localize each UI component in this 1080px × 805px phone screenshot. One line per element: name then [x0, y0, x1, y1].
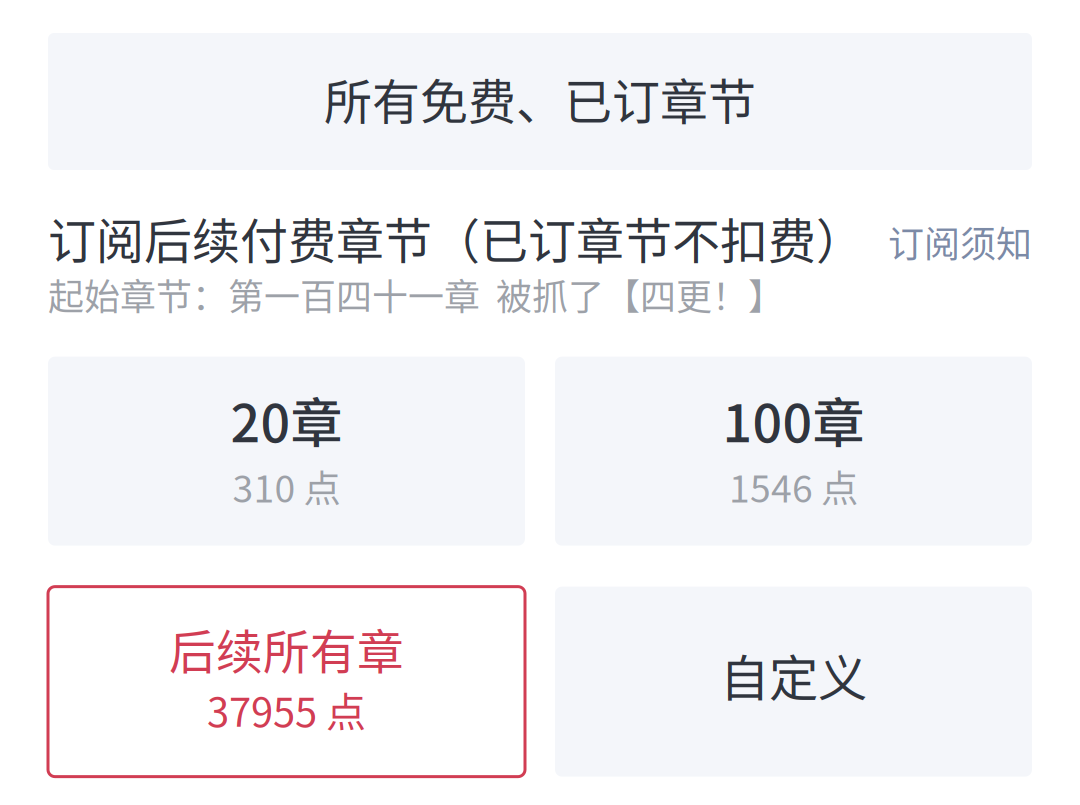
- staticText: 1546 点: [729, 459, 858, 513]
- staticText: 起始章节：第一百四十一章 被抓了【四更！】: [48, 268, 784, 321]
- staticText: 310 点: [232, 459, 340, 513]
- staticText: 自定义: [720, 639, 867, 710]
- button[interactable]: 后续所有章: [48, 587, 525, 777]
- staticText: 20章: [230, 382, 342, 457]
- staticText: 37955 点: [207, 680, 366, 738]
- button[interactable]: 所有免费、已订章节: [48, 33, 1032, 170]
- button[interactable]: 订阅须知: [888, 208, 1032, 268]
- staticText: 订阅后续付费章节（已订章节不扣费）: [48, 203, 864, 272]
- button[interactable]: 20章: [48, 357, 525, 546]
- staticText: 所有免费、已订章节: [324, 64, 756, 133]
- button[interactable]: 自定义: [555, 587, 1032, 777]
- staticText: 100章: [722, 382, 864, 457]
- button[interactable]: 100章: [555, 357, 1032, 546]
- staticText: 后续所有章: [169, 615, 404, 682]
- staticText: 订阅须知: [888, 216, 1032, 268]
